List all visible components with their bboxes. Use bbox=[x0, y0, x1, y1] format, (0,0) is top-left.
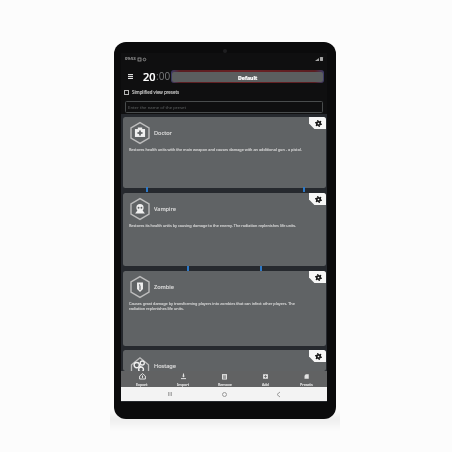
button[interactable]: Enter the name of the preset bbox=[125, 101, 323, 113]
button[interactable]: Recents bbox=[165, 389, 175, 399]
staticText: 20 bbox=[143, 69, 156, 84]
staticText: 09:53 bbox=[125, 56, 136, 62]
button[interactable]: Remove bbox=[204, 371, 245, 387]
staticText: Restores health units with the main weap… bbox=[129, 147, 307, 152]
staticText: Add bbox=[262, 382, 269, 387]
button[interactable]: Default bbox=[172, 72, 323, 82]
button[interactable]: Doctor bbox=[123, 117, 326, 188]
button[interactable]: Zombie bbox=[123, 271, 326, 346]
button[interactable]: Add bbox=[245, 371, 286, 387]
button[interactable]: Settings bbox=[309, 117, 326, 129]
staticText: Simplified view presets bbox=[132, 89, 180, 95]
button[interactable]: Home bbox=[219, 389, 229, 399]
button[interactable]: Settings bbox=[309, 350, 326, 362]
staticText: Remove bbox=[218, 382, 232, 387]
staticText: Enter the name of the preset bbox=[128, 104, 187, 110]
staticText: Import bbox=[177, 382, 190, 387]
button[interactable]: Menu bbox=[123, 69, 137, 83]
button[interactable]: Export bbox=[121, 371, 163, 387]
staticText: Causes great damage by transforming play… bbox=[129, 301, 307, 311]
button[interactable]: Vampire bbox=[123, 193, 326, 266]
staticText: :00 bbox=[156, 69, 171, 83]
staticText: Vampire bbox=[154, 205, 176, 213]
button[interactable]: Settings bbox=[309, 271, 326, 283]
staticText: Presets bbox=[300, 382, 313, 387]
button[interactable]: Back bbox=[273, 389, 283, 399]
button[interactable]: Hostage bbox=[123, 350, 326, 371]
staticText: Hostage bbox=[154, 362, 176, 370]
button[interactable]: Simplified view presets bbox=[124, 86, 323, 98]
staticText: Export bbox=[136, 382, 148, 387]
staticText: Default bbox=[238, 74, 258, 81]
staticText: Restores its health units by causing dam… bbox=[129, 223, 307, 228]
staticText: Zombie bbox=[154, 283, 174, 291]
button[interactable]: Presets bbox=[286, 371, 327, 387]
button[interactable]: Import bbox=[163, 371, 204, 387]
staticText: Doctor bbox=[154, 129, 172, 137]
button[interactable]: Settings bbox=[309, 193, 326, 205]
